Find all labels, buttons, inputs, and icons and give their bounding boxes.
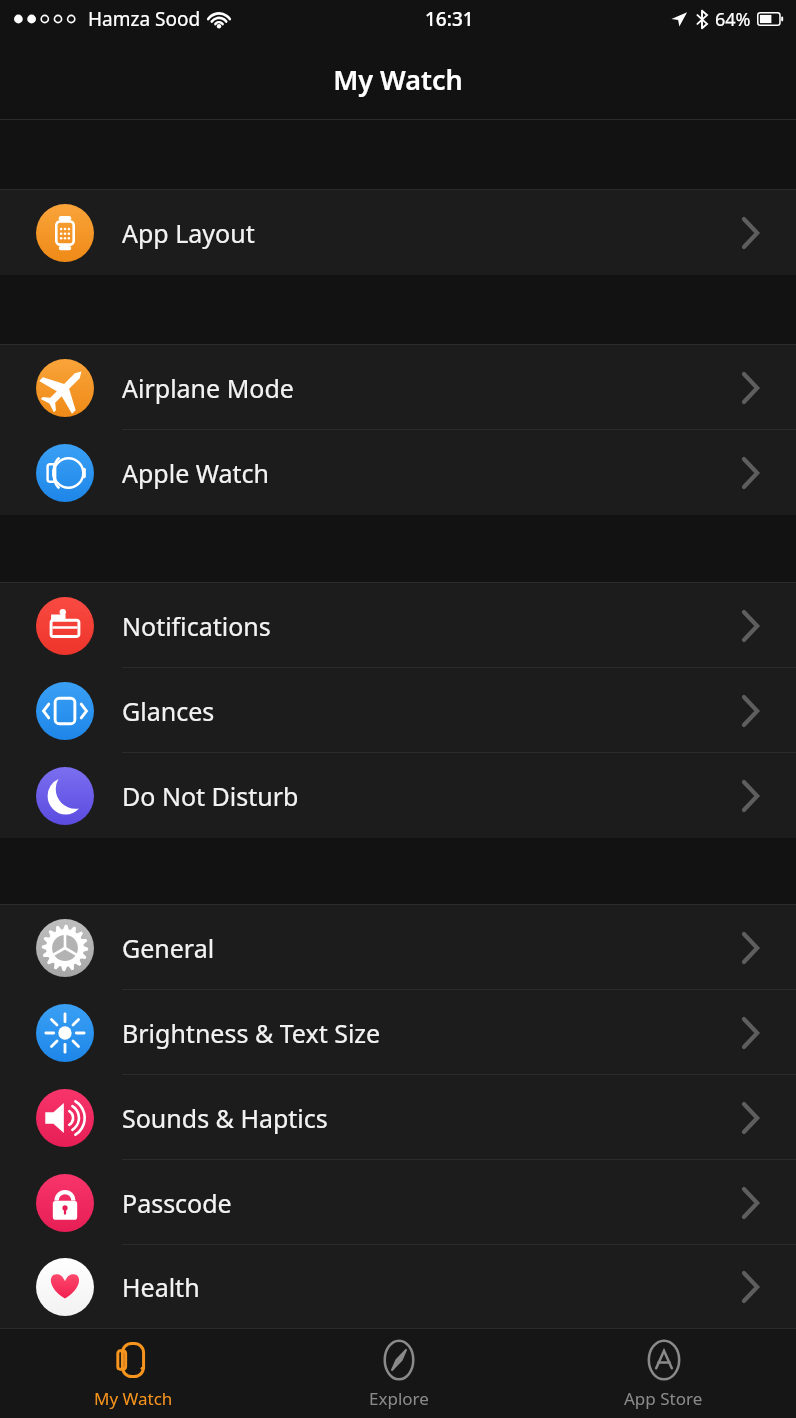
- staticText: Passcode: [122, 1186, 232, 1220]
- button[interactable]: App Store: [531, 1328, 796, 1418]
- button[interactable]: App Layout: [0, 190, 796, 275]
- button[interactable]: Health: [0, 1245, 796, 1328]
- button[interactable]: Explore: [266, 1328, 531, 1418]
- staticText: My Watch: [94, 1387, 173, 1410]
- staticText: Do Not Disturb: [122, 779, 299, 813]
- button[interactable]: Passcode: [0, 1160, 796, 1245]
- button[interactable]: General: [0, 905, 796, 990]
- staticText: Apple Watch: [122, 456, 270, 490]
- staticText: App Store: [624, 1387, 703, 1410]
- button[interactable]: Glances: [0, 668, 796, 753]
- staticText: 64%: [715, 7, 751, 32]
- button[interactable]: Apple Watch: [0, 430, 796, 515]
- button[interactable]: My Watch: [0, 1328, 266, 1418]
- staticText: Explore: [369, 1387, 429, 1410]
- staticText: Hamza Sood: [88, 6, 201, 32]
- staticText: Airplane Mode: [122, 371, 294, 405]
- button[interactable]: Airplane Mode: [0, 345, 796, 430]
- button[interactable]: Brightness & Text Size: [0, 990, 796, 1075]
- button[interactable]: Notifications: [0, 583, 796, 668]
- staticText: 16:31: [425, 6, 474, 32]
- staticText: Sounds & Haptics: [122, 1101, 328, 1135]
- staticText: Notifications: [122, 609, 271, 643]
- staticText: General: [122, 931, 215, 965]
- staticText: My Watch: [333, 61, 463, 98]
- button[interactable]: Sounds & Haptics: [0, 1075, 796, 1160]
- staticText: Brightness & Text Size: [122, 1016, 381, 1050]
- staticText: Health: [122, 1270, 200, 1304]
- staticText: App Layout: [122, 216, 255, 250]
- staticText: Glances: [122, 694, 215, 728]
- button[interactable]: Do Not Disturb: [0, 753, 796, 838]
